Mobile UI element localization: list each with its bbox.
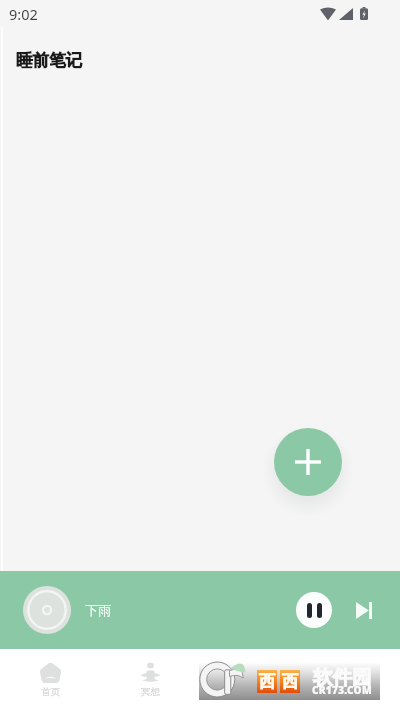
staticText: CR173.COM	[312, 683, 372, 697]
button[interactable]: 我的	[300, 649, 400, 711]
button[interactable]: 首页	[0, 649, 100, 711]
staticText: 我的	[341, 686, 360, 698]
staticText: 冥想	[141, 686, 160, 698]
staticText: 睡前笔记	[16, 50, 82, 71]
staticText: 西	[282, 672, 298, 692]
button[interactable]: Pause	[296, 592, 332, 628]
staticText: 下雨	[85, 602, 111, 618]
button[interactable]: Add note	[274, 428, 342, 496]
staticText: 9:02	[9, 4, 38, 24]
staticText: 西	[259, 672, 275, 692]
button[interactable]: 助眠	[200, 649, 300, 711]
button[interactable]: Next track	[354, 600, 374, 620]
button[interactable]: 冥想	[100, 649, 200, 711]
staticText: 首页	[41, 686, 60, 698]
staticText: 软件园	[313, 665, 372, 690]
staticText: 助眠	[241, 686, 260, 698]
